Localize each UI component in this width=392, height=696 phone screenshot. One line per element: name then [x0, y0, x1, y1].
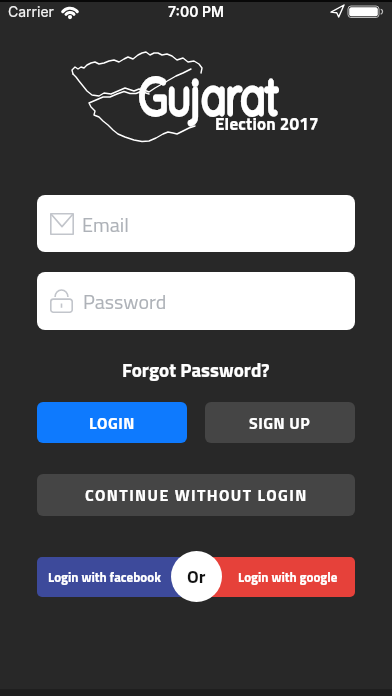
staticText: 7:00 PM [0, 3, 392, 20]
button[interactable]: Login with google [196, 557, 355, 597]
button[interactable]: Password [37, 272, 355, 330]
staticText: Password [83, 286, 167, 316]
staticText: Login with google [238, 567, 338, 587]
staticText: Gujarat [139, 64, 278, 127]
button[interactable]: CONTINUE WITHOUT LOGIN [37, 474, 355, 516]
staticText: Or [187, 563, 206, 590]
button[interactable]: SIGN UP [205, 402, 355, 443]
staticText: Login with facebook [48, 567, 161, 587]
staticText: Election 2017 [215, 111, 319, 137]
staticText: CONTINUE WITHOUT LOGIN [85, 483, 308, 507]
staticText: Forgot Password? [122, 355, 270, 383]
staticText: Gujarat [139, 64, 278, 127]
staticText: LOGIN [89, 411, 135, 435]
button[interactable]: Email [37, 195, 355, 252]
staticText: Email [82, 209, 129, 239]
button[interactable]: Login with facebook [37, 557, 196, 597]
button[interactable]: LOGIN [37, 402, 187, 443]
button[interactable]: Forgot Password? [122, 355, 270, 383]
staticText: Carrier [8, 3, 54, 20]
staticText: SIGN UP [249, 411, 311, 435]
